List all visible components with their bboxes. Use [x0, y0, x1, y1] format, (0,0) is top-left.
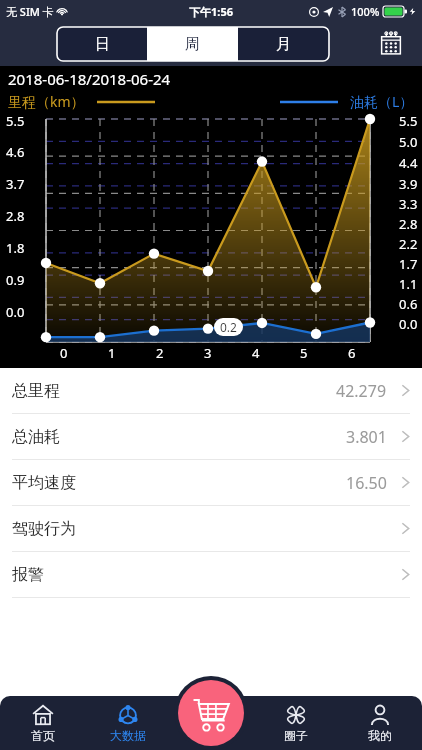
button[interactable]: 总里程: [0, 368, 422, 413]
staticText: 0.6: [399, 295, 418, 313]
staticText: 42.279: [336, 380, 387, 402]
button[interactable]: 平均速度: [0, 460, 422, 505]
staticText: 我的: [368, 728, 392, 743]
staticText: 3: [204, 344, 212, 362]
staticText: 日: [95, 35, 110, 54]
staticText: 周: [185, 35, 200, 54]
staticText: 1.7: [399, 255, 418, 273]
staticText: 5.0: [399, 133, 418, 151]
staticText: 0.2: [220, 319, 237, 335]
button[interactable]: 我的: [338, 696, 422, 750]
staticText: 总里程: [12, 381, 60, 401]
staticText: 2.8: [6, 207, 25, 225]
staticText: 0.0: [399, 315, 418, 333]
staticText: 1: [108, 344, 116, 362]
staticText: 5: [300, 344, 308, 362]
staticText: 圈子: [284, 728, 308, 743]
button[interactable]: 周: [147, 27, 238, 61]
staticText: 0: [60, 344, 68, 362]
button[interactable]: 月: [238, 27, 329, 61]
staticText: 报警: [12, 565, 44, 585]
staticText: 4.4: [399, 154, 418, 172]
button[interactable]: 总油耗: [0, 414, 422, 459]
staticText: 4.6: [6, 143, 25, 161]
staticText: 100%: [351, 4, 380, 19]
button[interactable]: 大数据: [85, 696, 170, 750]
staticText: 1.8: [6, 239, 25, 257]
staticText: 里程（km）: [8, 92, 85, 111]
button[interactable]: 报警: [0, 552, 422, 597]
staticText: 平均速度: [12, 473, 76, 493]
staticText: 油耗（L）: [350, 92, 414, 111]
button[interactable]: Shop: [174, 676, 248, 750]
staticText: 2: [156, 344, 164, 362]
staticText: 无 SIM 卡: [6, 4, 54, 19]
button[interactable]: Calendar: [376, 29, 406, 59]
staticText: 2.8: [399, 215, 418, 233]
staticText: 5.5: [399, 112, 418, 130]
staticText: 6: [348, 344, 356, 362]
staticText: 1.1: [399, 275, 418, 293]
staticText: 3.3: [399, 195, 418, 213]
staticText: 16.50: [346, 472, 387, 494]
button[interactable]: 驾驶行为: [0, 506, 422, 551]
staticText: 3.9: [399, 175, 418, 193]
staticText: 0.9: [6, 271, 25, 289]
staticText: 驾驶行为: [12, 519, 76, 539]
staticText: 大数据: [110, 728, 146, 743]
staticText: 月: [276, 35, 291, 54]
button[interactable]: 日: [57, 27, 147, 61]
staticText: 4: [252, 344, 260, 362]
staticText: 2018-06-18/2018-06-24: [8, 69, 171, 89]
staticText: 首页: [31, 728, 55, 743]
staticText: 0.0: [6, 303, 25, 321]
staticText: 3.7: [6, 175, 25, 193]
staticText: 总油耗: [12, 427, 60, 447]
staticText: 下午1:56: [189, 4, 233, 19]
staticText: 3.801: [346, 426, 387, 448]
staticText: 2.2: [399, 235, 418, 253]
staticText: 5.5: [6, 112, 25, 130]
button[interactable]: 首页: [0, 696, 85, 750]
button[interactable]: 圈子: [254, 696, 338, 750]
